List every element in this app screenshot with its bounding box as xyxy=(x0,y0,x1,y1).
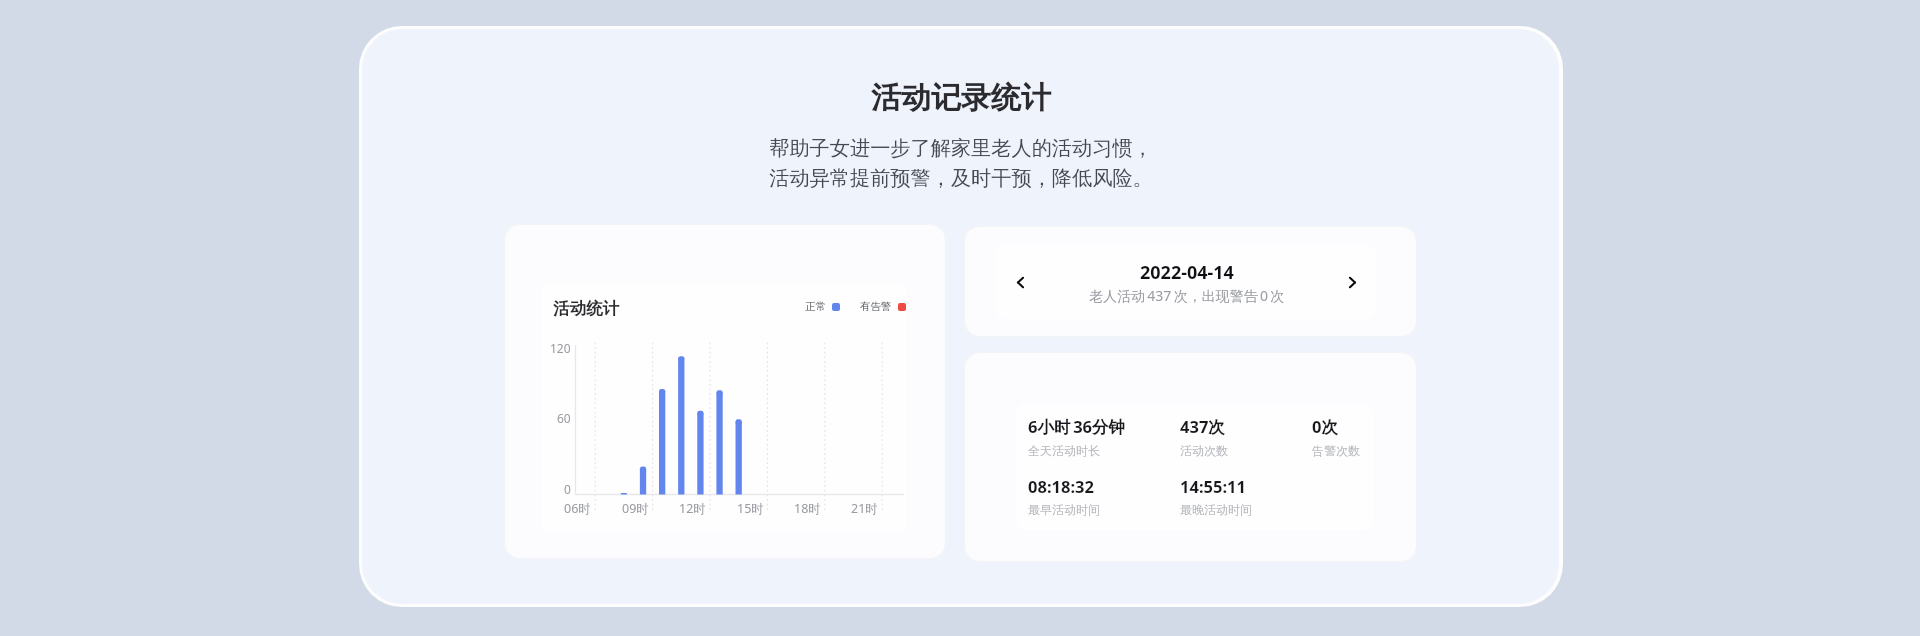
staticText: 09时 xyxy=(622,500,649,517)
staticText: 正常 xyxy=(805,300,826,313)
staticText: 活动统计 xyxy=(553,298,619,319)
staticText: 2022-04-14 xyxy=(1140,260,1234,285)
staticText: 0次 xyxy=(1312,415,1338,438)
staticText: 21时 xyxy=(851,500,878,517)
staticText: 437次 xyxy=(1180,415,1225,438)
staticText: 最早活动时间 xyxy=(1028,502,1100,517)
button[interactable]: Previous day xyxy=(996,245,1044,319)
staticText: 最晚活动时间 xyxy=(1180,502,1252,517)
staticText: 0 xyxy=(564,481,571,497)
staticText: 08:18:32 xyxy=(1028,475,1094,497)
staticText: 活动次数 xyxy=(1180,443,1228,458)
staticText: 6小时 36分钟 xyxy=(1028,415,1126,438)
button[interactable]: 08:18:32 xyxy=(1028,475,1100,517)
button[interactable]: 437次 xyxy=(1180,415,1228,458)
staticText: 告警次数 xyxy=(1312,443,1360,458)
staticText: 帮助子女进一步了解家里老人的活动习惯， 活动异常提前预警，及时干预，降低风险。 xyxy=(769,136,1153,191)
staticText: 15时 xyxy=(737,500,764,517)
staticText: 60 xyxy=(557,410,571,426)
button[interactable]: 0次 xyxy=(1312,415,1360,458)
staticText: 18时 xyxy=(794,500,821,517)
staticText: 活动记录统计 xyxy=(871,79,1051,117)
button[interactable]: 14:55:11 xyxy=(1180,475,1252,517)
staticText: 120 xyxy=(550,340,571,356)
staticText: 全天活动时长 xyxy=(1028,443,1100,458)
button[interactable]: 活动统计图表 xyxy=(504,224,946,559)
staticText: 06时 xyxy=(564,500,591,517)
button[interactable]: Next day xyxy=(1328,245,1376,319)
button[interactable]: 6小时 36分钟 xyxy=(964,352,1417,562)
staticText: 14:55:11 xyxy=(1180,475,1246,497)
staticText: 12时 xyxy=(679,500,706,517)
button[interactable]: 6小时 36分钟 xyxy=(1028,415,1126,458)
staticText: 老人活动 437 次，出现警告 0 次 xyxy=(1089,286,1285,305)
staticText: 有告警 xyxy=(860,300,892,313)
